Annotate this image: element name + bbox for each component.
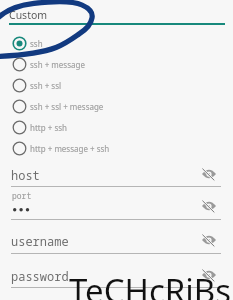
staticText: http + message + ssh: [30, 143, 110, 154]
button[interactable]: ssh + message: [0, 54, 233, 75]
staticText: http + ssh: [30, 122, 67, 133]
staticText: Custom: [9, 8, 48, 22]
staticText: ssh + message: [30, 59, 85, 70]
other: Toggle visibility: [201, 200, 217, 212]
staticText: host: [11, 167, 40, 183]
button[interactable]: Toggle visibility: [200, 198, 218, 214]
button[interactable]: ssh + ssl: [0, 75, 233, 96]
staticText: ssh: [30, 38, 43, 49]
staticText: TeCHcRiBs: [69, 268, 232, 300]
staticText: password: [11, 268, 69, 284]
staticText: username: [11, 233, 69, 249]
staticText: port: [12, 190, 32, 201]
button[interactable]: Toggle visibility: [200, 232, 218, 248]
button[interactable]: Toggle visibility: [200, 166, 218, 182]
other: Toggle visibility: [201, 234, 217, 246]
button[interactable]: Toggle visibility: [200, 267, 218, 283]
button[interactable]: http + message + ssh: [0, 138, 233, 159]
other: Toggle visibility: [201, 269, 217, 281]
staticText: ssh + ssl: [30, 80, 62, 91]
staticText: ssh + ssl + message: [30, 101, 104, 112]
other: Toggle visibility: [201, 168, 217, 180]
button[interactable]: ssh + ssl + message: [0, 96, 233, 117]
button[interactable]: ssh: [0, 33, 233, 54]
button[interactable]: http + ssh: [0, 117, 233, 138]
